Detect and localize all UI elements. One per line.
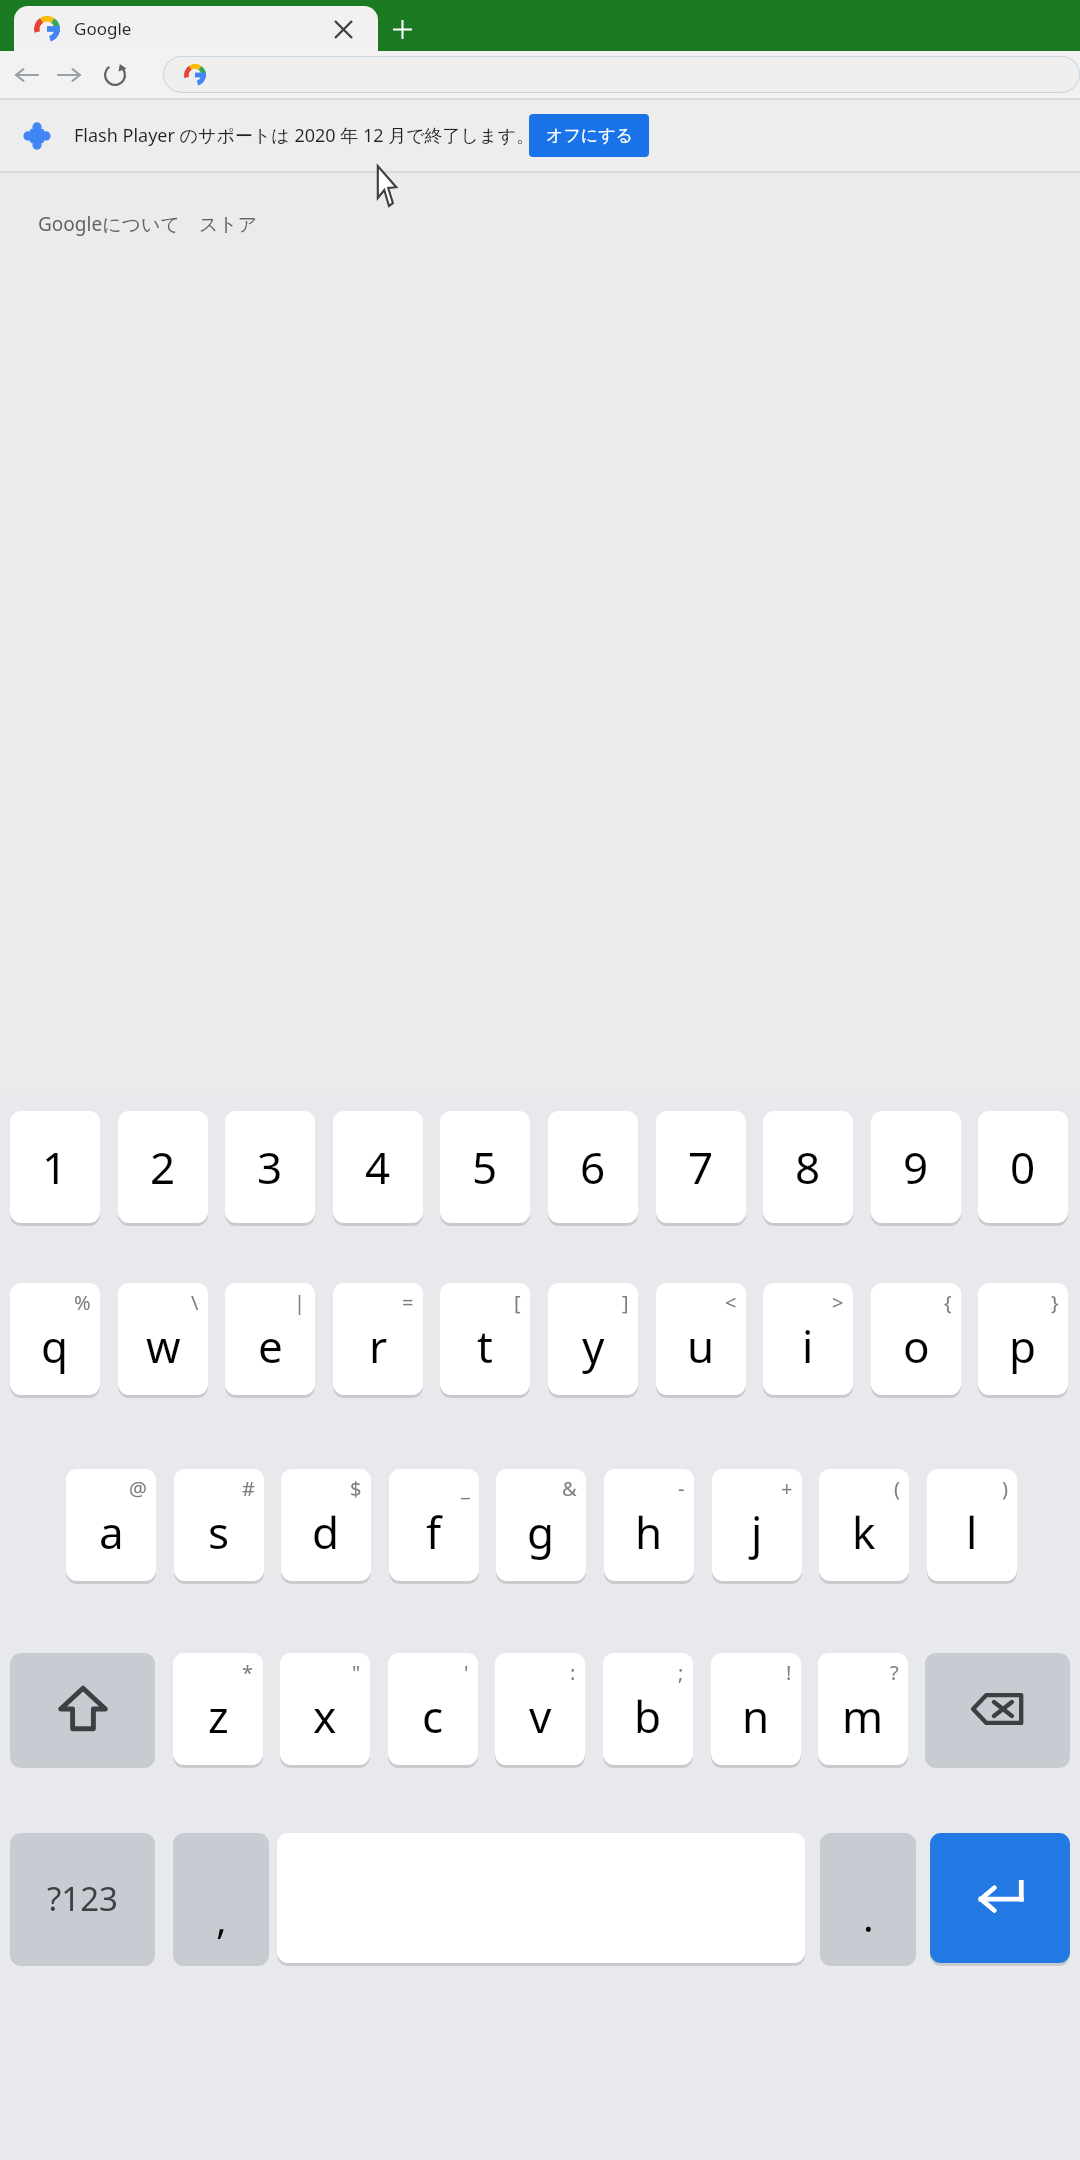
button[interactable]: Backspace [925,1653,1070,1765]
staticText: m [842,1686,884,1746]
staticText: 0 [1010,1137,1036,1197]
button[interactable]: 5 [440,1111,530,1223]
staticText: > [832,1289,844,1316]
button[interactable]: 6 [548,1111,638,1223]
staticText: % [74,1289,91,1316]
button[interactable]: Period [820,1833,916,1963]
button[interactable]: " [280,1653,370,1765]
button[interactable]: } [978,1283,1068,1395]
button[interactable]: オフにする [529,114,649,157]
button[interactable]: ; [603,1653,693,1765]
button[interactable]: ! [711,1653,801,1765]
staticText: k [852,1502,876,1562]
button[interactable] [163,56,1080,93]
staticText: - [678,1475,685,1502]
button[interactable]: \ [118,1283,208,1395]
staticText: 4 [365,1137,391,1197]
button[interactable]: Back [8,56,46,94]
button[interactable]: _ [389,1469,479,1581]
button[interactable]: 9 [871,1111,961,1223]
staticText: g [527,1502,555,1562]
staticText: e [258,1316,283,1376]
staticText: & [562,1475,577,1502]
button[interactable]: 7 [656,1111,746,1223]
staticText: \ [191,1289,199,1316]
button[interactable]: * [173,1653,263,1765]
button[interactable]: [ [440,1283,530,1395]
staticText: j [751,1502,763,1562]
button[interactable]: 4 [333,1111,423,1223]
staticText: 5 [472,1137,498,1197]
staticText: @ [129,1475,147,1502]
button[interactable]: Shift [10,1653,155,1765]
button[interactable]: % [10,1283,100,1395]
button[interactable]: @ [66,1469,156,1581]
button[interactable]: | [225,1283,315,1395]
staticText: = [402,1289,414,1316]
button[interactable]: ?123 [10,1833,155,1963]
button[interactable]: Reload [96,56,134,94]
staticText: x [313,1686,337,1746]
staticText: } [1051,1289,1059,1316]
staticText: 6 [580,1137,606,1197]
button[interactable]: New tab [383,10,421,48]
staticText: y [582,1316,605,1376]
button[interactable]: 1 [10,1111,100,1223]
staticText: ) [1002,1475,1008,1502]
staticText: [ [514,1289,521,1316]
staticText: b [634,1686,662,1746]
button[interactable]: ) [927,1469,1017,1581]
staticText: f [426,1502,442,1562]
button[interactable]: & [496,1469,586,1581]
staticText: . [863,1889,874,1943]
button[interactable]: 3 [225,1111,315,1223]
button[interactable]: # [174,1469,264,1581]
staticText: : [570,1659,576,1686]
staticText: s [208,1502,230,1562]
staticText: Flash Player のサポートは 2020 年 12 月で終了します。 [74,123,534,148]
staticText: * [242,1659,254,1686]
button[interactable]: Comma [173,1833,269,1963]
button[interactable]: = [333,1283,423,1395]
button[interactable]: ' [388,1653,478,1765]
button[interactable]: Google [14,6,378,51]
staticText: オフにする [546,125,633,146]
staticText: _ [461,1475,470,1502]
staticText: t [477,1316,493,1376]
staticText: ] [622,1289,629,1316]
staticText: i [802,1316,814,1376]
button[interactable]: Forward [50,56,88,94]
staticText: ! [786,1659,792,1686]
button[interactable]: 2 [118,1111,208,1223]
button[interactable]: > [763,1283,853,1395]
staticText: o [903,1316,930,1376]
staticText: < [725,1289,737,1316]
staticText: p [1009,1316,1037,1376]
staticText: { [944,1289,952,1316]
button[interactable]: < [656,1283,746,1395]
staticText: ' [464,1659,469,1686]
staticText: 7 [688,1137,714,1197]
button[interactable]: $ [281,1469,371,1581]
staticText: u [687,1316,715,1376]
button[interactable]: Close tab [326,12,360,46]
staticText: ; [678,1659,684,1686]
staticText: 2 [150,1137,176,1197]
button[interactable]: : [495,1653,585,1765]
staticText: h [635,1502,663,1562]
button[interactable]: ? [818,1653,908,1765]
staticText: " [352,1659,361,1686]
staticText: z [208,1686,229,1746]
button[interactable]: Enter [930,1833,1070,1963]
button[interactable]: + [712,1469,802,1581]
button[interactable]: { [871,1283,961,1395]
staticText: $ [350,1475,362,1502]
button[interactable]: 0 [978,1111,1068,1223]
button[interactable]: ( [819,1469,909,1581]
button[interactable]: ] [548,1283,638,1395]
staticText: # [242,1475,255,1502]
button[interactable]: 8 [763,1111,853,1223]
button[interactable]: - [604,1469,694,1581]
staticText: v [529,1686,552,1746]
